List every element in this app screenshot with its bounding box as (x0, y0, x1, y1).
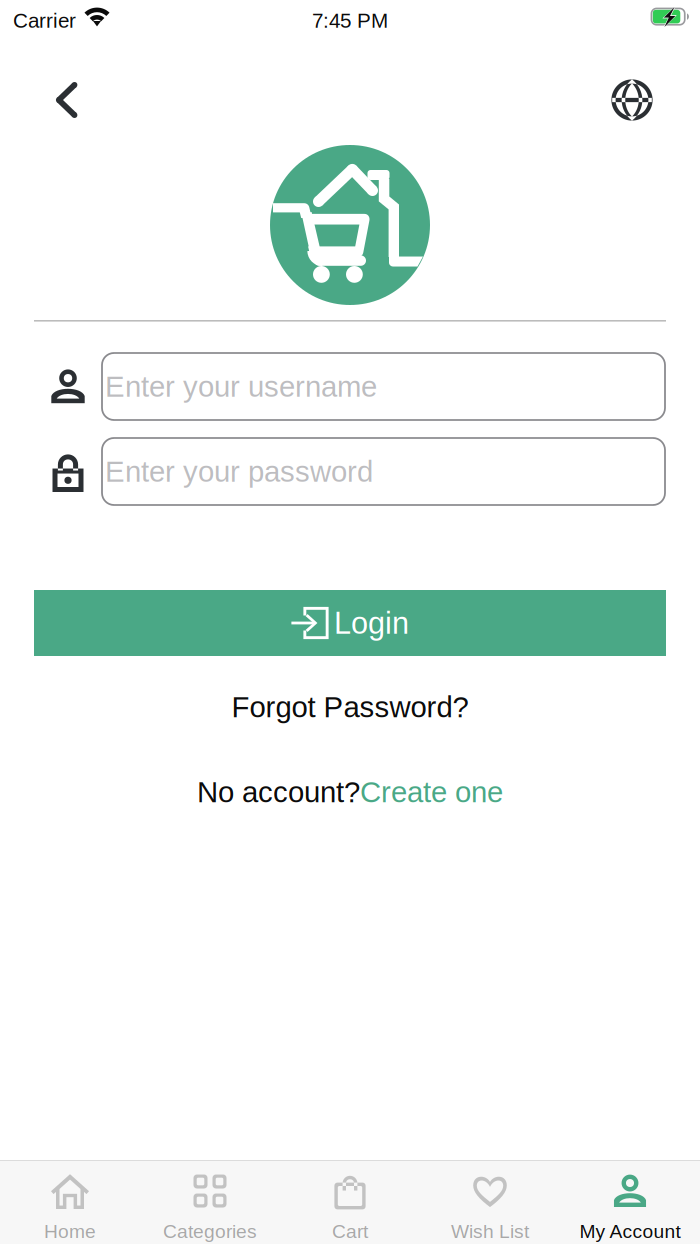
button[interactable]: Forgot Password? (0, 692, 700, 722)
staticText: 7:45 PM (312, 9, 388, 32)
staticText: Enter your username (105, 370, 377, 403)
staticText: Home (44, 1220, 96, 1242)
staticText: Forgot Password? (231, 691, 468, 723)
button[interactable]: Login (34, 590, 666, 656)
button[interactable]: Wish List (420, 1160, 560, 1244)
staticText: Carrier (13, 9, 76, 32)
button[interactable]: Cart (280, 1160, 420, 1244)
staticText: Enter your password (105, 455, 373, 488)
button[interactable]: Create one (360, 776, 503, 808)
staticText: Create one (360, 776, 503, 808)
staticText: Wish List (451, 1220, 529, 1242)
button[interactable]: Home (0, 1160, 140, 1244)
button[interactable]: Back (39, 63, 93, 137)
staticText: No account? (197, 776, 360, 808)
staticText: Categories (163, 1220, 257, 1242)
staticText: My Account (579, 1220, 680, 1242)
staticText: Login (334, 606, 409, 640)
staticText: Cart (332, 1220, 368, 1242)
button[interactable]: My Account (560, 1160, 700, 1244)
button[interactable]: Language (605, 63, 659, 137)
button[interactable]: Categories (140, 1160, 280, 1244)
